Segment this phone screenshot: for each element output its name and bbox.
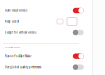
button[interactable]: Keep size at [0,16,92,27]
staticText: Run on YouTube Music [5,54,31,58]
button[interactable]: Run on YouTube Music [0,51,92,62]
staticText: YOUTUBE MUSIC [5,46,20,49]
button[interactable]: Except for vertical videos [0,27,92,38]
staticText: Except for vertical videos [5,31,36,34]
button[interactable]: Auto-resize videos [0,5,92,16]
staticText: Use global quality preferences [5,65,41,69]
staticText: Auto-resize videos [5,9,27,12]
staticText: Keep size at [5,20,19,23]
button[interactable]: Use global quality preferences [0,62,92,73]
